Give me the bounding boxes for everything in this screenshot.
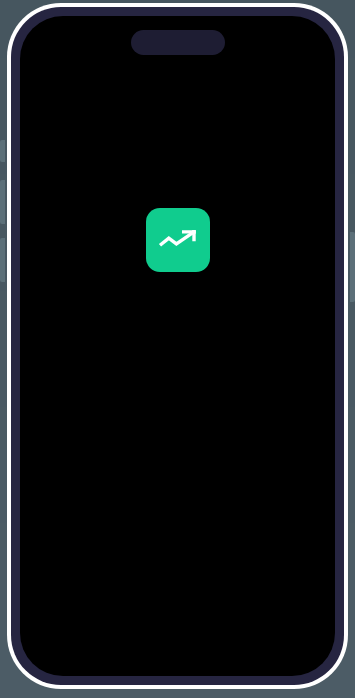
- button[interactable]: Trending up app icon: [146, 208, 210, 272]
